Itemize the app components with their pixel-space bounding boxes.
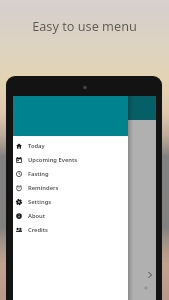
staticText: Credits: [28, 226, 48, 234]
staticText: Upcoming Events: [28, 156, 78, 164]
staticText: Today: [28, 142, 45, 150]
staticText: Easy to use menu: [32, 17, 137, 34]
button[interactable]: Today: [13, 139, 128, 153]
button[interactable]: Fasting: [13, 167, 128, 181]
button[interactable]: Reminders: [13, 181, 128, 195]
button[interactable]: Credits: [13, 223, 128, 237]
staticText: Reminders: [28, 184, 59, 192]
staticText: About: [28, 212, 46, 220]
staticText: Fasting: [28, 170, 49, 178]
staticText: Settings: [28, 198, 52, 206]
button[interactable]: Settings: [13, 195, 128, 209]
button[interactable]: About: [13, 209, 128, 223]
button[interactable]: Upcoming Events: [13, 153, 128, 167]
